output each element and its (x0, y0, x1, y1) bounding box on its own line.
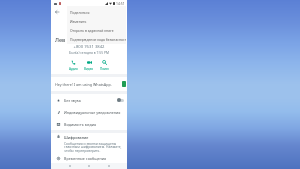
staticText: +800 7631 3842 (51, 44, 127, 50)
staticText: Видимость медиа (64, 122, 97, 127)
button[interactable]: Поиск (99, 59, 110, 72)
staticText: Видео (84, 67, 94, 71)
button[interactable]: Видео (83, 59, 95, 72)
staticText: Открыть в адресной книге (70, 28, 114, 33)
button[interactable]: Hey there! I am using WhatsApp. (51, 77, 127, 91)
button[interactable]: Подтверждение кода безопасности (67, 35, 126, 44)
button[interactable]: Временные сообщения (51, 153, 127, 163)
button[interactable]: Шифрование (51, 133, 127, 153)
staticText: Аудио (69, 67, 78, 71)
button[interactable]: Видимость медиа (51, 118, 127, 130)
button[interactable]: Поделиться (67, 8, 126, 17)
staticText: Был(а) сегодня в 7:55 PM (51, 50, 127, 54)
staticText: Подтверждение кода безопасности (70, 37, 126, 42)
staticText: Индивидуальные уведомления (64, 110, 121, 115)
button[interactable]: Аудио (68, 59, 79, 72)
staticText: Сообщения и звонки защищены сквозным шиф… (64, 141, 123, 153)
staticText: 14:51 (116, 1, 125, 6)
button[interactable]: Открыть в адресной книге (67, 26, 126, 35)
button[interactable]: Back (55, 10, 59, 14)
staticText: Лев (55, 36, 127, 44)
staticText: Временные сообщения (64, 156, 107, 161)
button[interactable]: Без звука (51, 94, 127, 106)
staticText: Без звука (64, 98, 81, 103)
staticText: Поделиться (70, 10, 90, 15)
staticText: Изменить (70, 19, 87, 24)
staticText: Поиск (100, 67, 109, 71)
button[interactable]: Изменить (67, 17, 126, 26)
staticText: Hey there! I am using WhatsApp. (55, 82, 112, 87)
button[interactable]: Индивидуальные уведомления (51, 106, 127, 118)
staticText: Шифрование (64, 135, 89, 140)
